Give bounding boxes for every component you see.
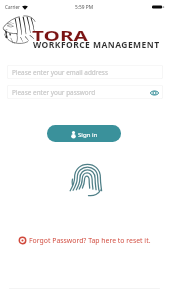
button[interactable]: Show password [149, 87, 160, 98]
staticText: Please enter your email address [12, 68, 108, 77]
button[interactable]: Forgot Password? Tap here to reset it. [0, 234, 169, 246]
staticText: TORA [32, 25, 89, 45]
staticText: 5:59 PM [75, 4, 94, 11]
button[interactable]: Please enter your password [7, 85, 163, 99]
staticText: Please enter your password [12, 88, 96, 97]
button[interactable]: Sign in with fingerprint [68, 162, 104, 198]
button[interactable]: Sign in [47, 125, 121, 142]
staticText: WORKFORCE MANAGEMENT [33, 39, 160, 51]
staticText: Carrier [5, 4, 20, 10]
staticText: Forgot Password? Tap here to reset it. [29, 236, 151, 245]
button[interactable]: Please enter your email address [7, 65, 163, 79]
staticText: Sign in [78, 130, 98, 138]
